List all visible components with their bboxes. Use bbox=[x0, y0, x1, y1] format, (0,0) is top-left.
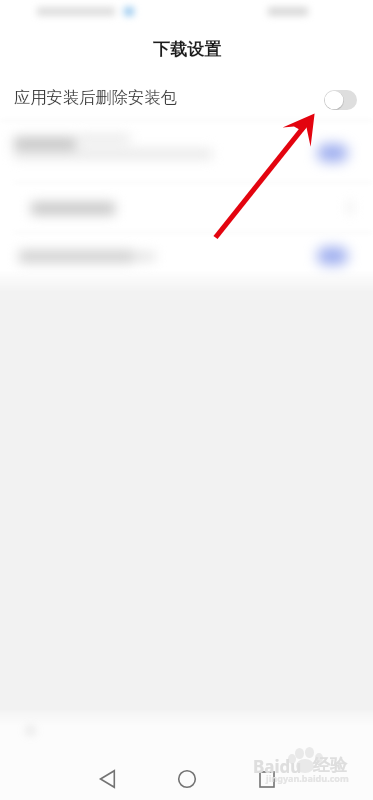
staticText: jingyan.baidu.com bbox=[266, 772, 349, 784]
button[interactable]: Home bbox=[167, 759, 207, 799]
button[interactable]: Delete installation package after instal… bbox=[324, 90, 357, 110]
staticText: 应用安装后删除安装包 bbox=[14, 87, 177, 108]
staticText: Baidu bbox=[253, 755, 302, 778]
staticText: 下载设置 bbox=[153, 39, 221, 60]
button[interactable]: 应用安装后删除安装包 bbox=[0, 75, 373, 119]
staticText: 经验 bbox=[313, 755, 347, 776]
button[interactable]: Recent apps bbox=[246, 759, 286, 799]
button[interactable]: Back bbox=[89, 759, 129, 799]
